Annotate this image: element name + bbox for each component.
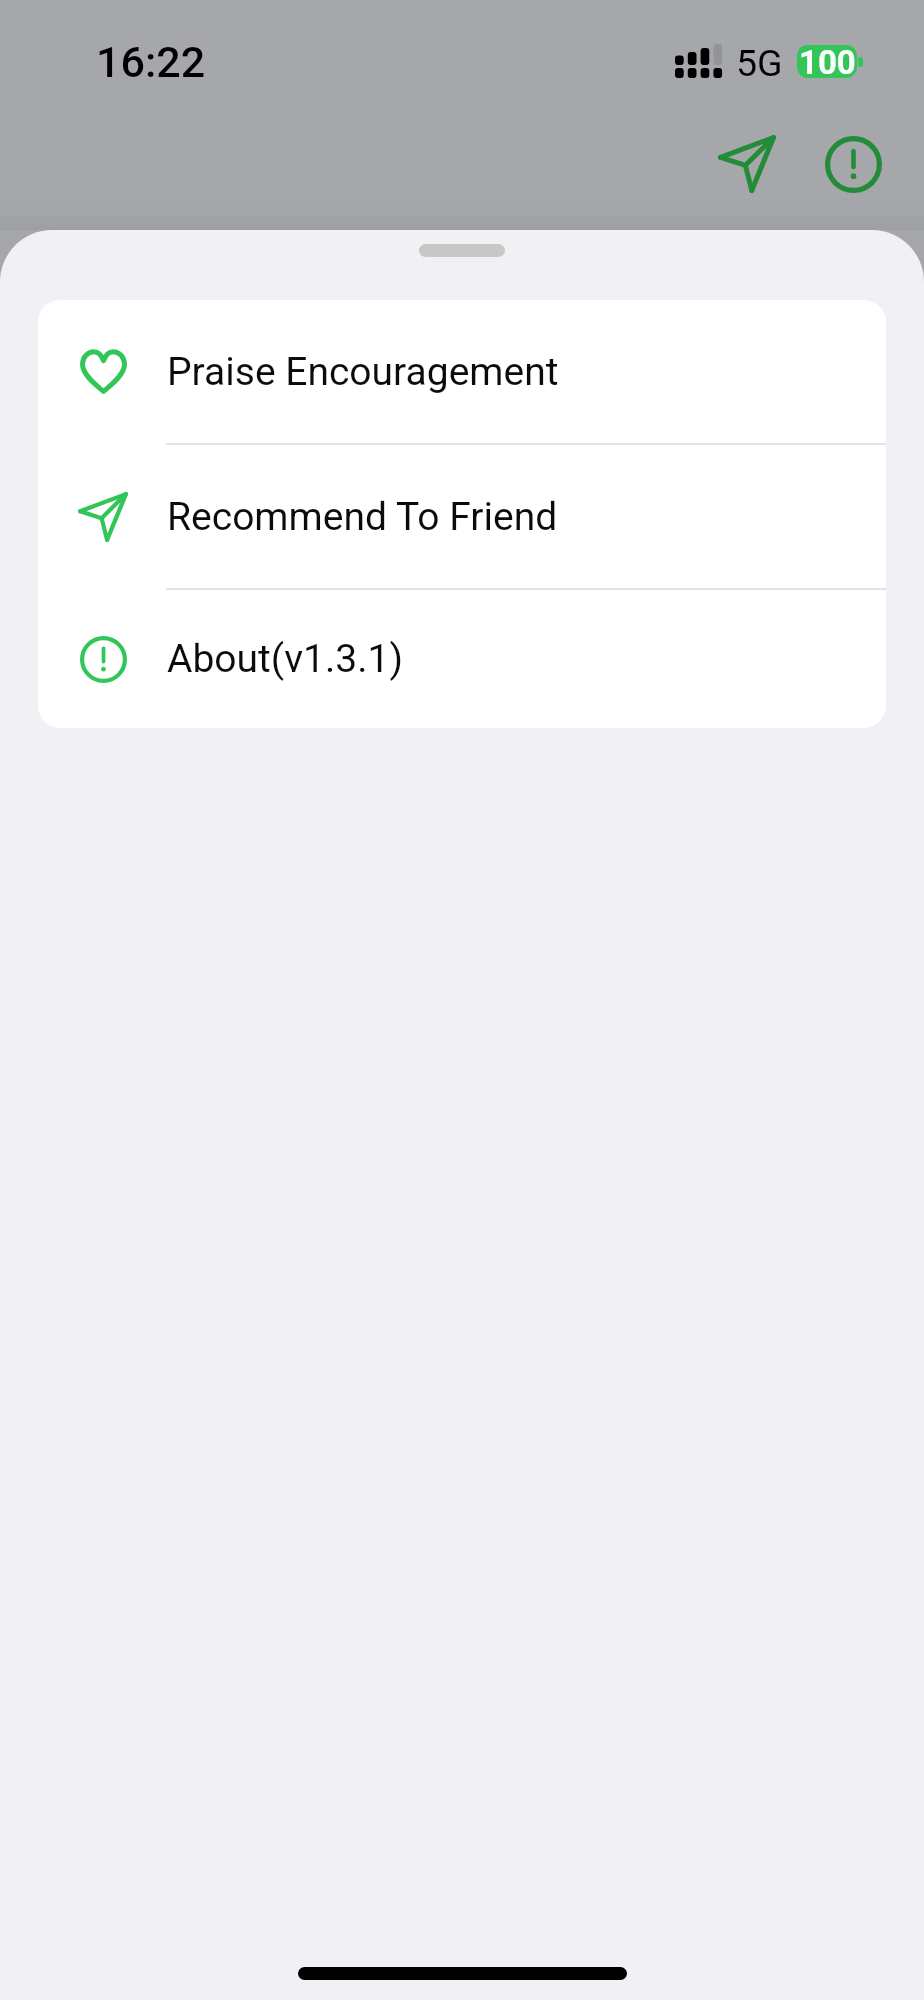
staticText: Recommend To Friend — [167, 494, 558, 540]
button[interactable]: Share — [698, 115, 796, 213]
staticText: About(v1.3.1) — [167, 636, 403, 682]
button[interactable]: About(v1.3.1) — [38, 590, 886, 728]
staticText: 100 — [799, 45, 856, 76]
button[interactable]: About — [804, 115, 902, 213]
button[interactable]: Recommend To Friend — [38, 445, 886, 588]
staticText: 5G — [736, 41, 783, 85]
staticText: 16:22 — [96, 37, 206, 87]
staticText: Praise Encouragement — [167, 349, 559, 395]
button[interactable]: Praise Encouragement — [38, 300, 886, 443]
